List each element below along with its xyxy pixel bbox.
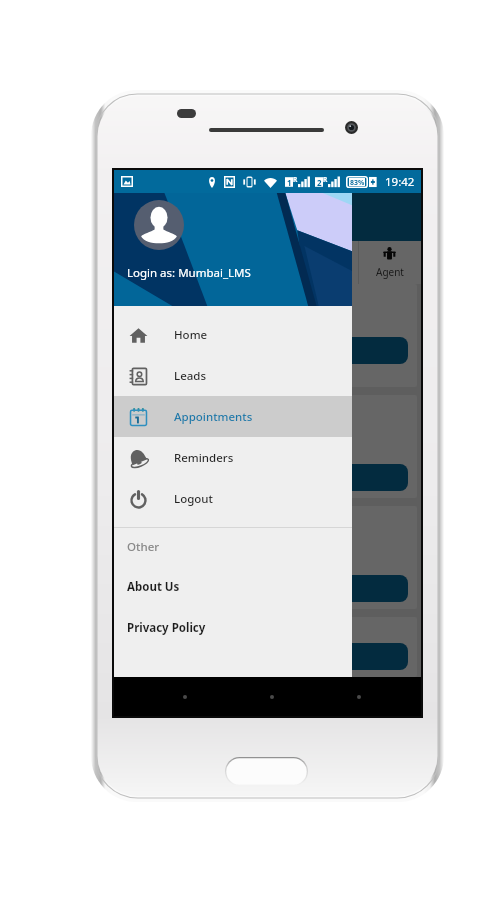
button[interactable]: Reminders	[114, 437, 352, 478]
button[interactable]: Logout	[114, 478, 352, 519]
staticText: About Us	[127, 579, 180, 595]
staticText: Other	[127, 539, 160, 555]
button[interactable]: Leads	[236, 241, 358, 284]
staticText: Privacy Policy	[127, 620, 206, 636]
staticText: Appointments	[174, 409, 253, 425]
button[interactable]	[118, 284, 417, 387]
staticText: 2	[317, 177, 322, 188]
button[interactable]	[316, 643, 408, 670]
button[interactable]: Agent	[358, 241, 421, 284]
staticText: Agent	[376, 265, 404, 279]
staticText: R	[323, 175, 328, 184]
staticText: 19:42	[385, 174, 415, 190]
button[interactable]: Already bought	[118, 617, 417, 677]
button[interactable]: About Us	[114, 566, 352, 607]
button[interactable]: Home	[257, 677, 287, 716]
staticText: Lead is Not Eligible	[128, 406, 242, 422]
staticText: Already bought	[128, 517, 221, 533]
staticText: Home	[174, 327, 208, 343]
staticText: Leads	[283, 265, 311, 279]
staticText: R	[293, 175, 298, 184]
button[interactable]	[316, 575, 408, 602]
button[interactable]: Home button	[225, 757, 308, 786]
staticText: 83%	[350, 178, 365, 186]
staticText: 1	[287, 177, 292, 188]
staticText: Logout	[174, 491, 213, 507]
button[interactable]	[316, 337, 408, 364]
staticText: Leads	[174, 368, 207, 384]
button[interactable]: Recents	[344, 677, 374, 716]
staticText: Home	[161, 265, 190, 279]
button[interactable]: Home	[114, 314, 352, 355]
button[interactable]: Appointments	[114, 396, 352, 437]
button[interactable]: Home	[114, 241, 236, 284]
button[interactable]: Lead is Not Eligible	[118, 395, 417, 498]
staticText: Reminders	[174, 450, 234, 466]
button[interactable]: Already bought	[118, 506, 417, 609]
button[interactable]	[316, 464, 408, 491]
staticText: Already bought	[128, 628, 221, 644]
button[interactable]: Privacy Policy	[114, 607, 352, 648]
button[interactable]: Leads	[114, 355, 352, 396]
button[interactable]: Back	[170, 677, 200, 716]
staticText: Login as: Mumbai_LMS	[127, 265, 251, 281]
